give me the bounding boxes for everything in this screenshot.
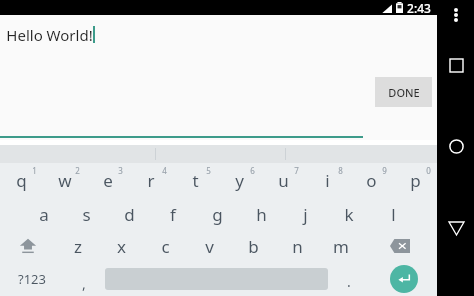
staticText: e — [103, 169, 113, 192]
staticText: 7 — [294, 165, 299, 176]
staticText: 2 — [75, 165, 80, 176]
staticText: t — [192, 169, 199, 192]
button[interactable]: Recents — [441, 50, 471, 80]
button[interactable]: . — [328, 262, 370, 296]
staticText: k — [344, 203, 354, 226]
button[interactable]: v — [187, 230, 231, 262]
button[interactable]: Enter — [370, 262, 437, 296]
staticText: j — [303, 203, 308, 226]
staticText: a — [39, 203, 49, 226]
button[interactable]: Back — [441, 213, 471, 243]
button[interactable]: l — [371, 198, 415, 230]
staticText: 8 — [338, 165, 343, 176]
staticText: v — [205, 235, 214, 258]
button[interactable]: a — [22, 198, 65, 230]
staticText: m — [333, 235, 349, 258]
button[interactable]: More options — [446, 5, 466, 25]
button[interactable]: j — [283, 198, 327, 230]
staticText: Hello World! — [6, 25, 93, 45]
button[interactable]: p — [393, 163, 437, 198]
staticText: q — [16, 169, 27, 192]
staticText: DONE — [388, 85, 420, 100]
button[interactable]: n — [275, 230, 319, 262]
staticText: w — [58, 169, 72, 192]
button[interactable]: h — [239, 198, 283, 230]
staticText: 1 — [32, 165, 37, 176]
button[interactable]: u — [261, 163, 305, 198]
button[interactable]: z — [56, 230, 99, 262]
staticText: f — [170, 203, 176, 226]
staticText: i — [325, 169, 330, 192]
button[interactable]: i — [305, 163, 349, 198]
staticText: . — [347, 272, 351, 291]
button[interactable]: d — [108, 198, 151, 230]
staticText: 9 — [382, 165, 387, 176]
staticText: ?123 — [18, 270, 46, 288]
staticText: 3 — [118, 165, 123, 176]
button[interactable]: k — [327, 198, 371, 230]
button[interactable]: t — [173, 163, 217, 198]
staticText: d — [124, 203, 135, 226]
staticText: 2:43 — [407, 0, 431, 15]
button[interactable]: Home — [441, 131, 471, 161]
button[interactable]: y — [217, 163, 261, 198]
staticText: c — [161, 235, 170, 258]
button[interactable]: f — [151, 198, 195, 230]
button[interactable]: r — [129, 163, 173, 198]
staticText: 4 — [162, 165, 167, 176]
staticText: 0 — [426, 165, 431, 176]
staticText: , — [82, 274, 86, 293]
button[interactable]: ?123 — [0, 262, 63, 296]
button[interactable]: DONE — [375, 77, 432, 107]
button[interactable]: x — [99, 230, 143, 262]
staticText: y — [235, 169, 244, 192]
staticText: p — [410, 169, 421, 192]
staticText: o — [366, 169, 377, 192]
staticText: h — [256, 203, 267, 226]
button[interactable]: b — [231, 230, 275, 262]
button[interactable]: o — [349, 163, 393, 198]
button[interactable]: , — [63, 262, 105, 296]
button[interactable]: c — [143, 230, 187, 262]
button[interactable]: m — [319, 230, 363, 262]
button[interactable]: Shift — [0, 230, 56, 262]
staticText: b — [248, 235, 259, 258]
staticText: 5 — [206, 165, 211, 176]
button[interactable]: w — [43, 163, 86, 198]
button[interactable]: s — [65, 198, 108, 230]
button[interactable]: Backspace — [363, 230, 437, 262]
staticText: g — [212, 203, 223, 226]
button[interactable]: g — [195, 198, 239, 230]
button[interactable]: e — [86, 163, 129, 198]
button[interactable]: q — [0, 163, 43, 198]
staticText: s — [82, 203, 91, 226]
staticText: x — [117, 235, 126, 258]
staticText: u — [278, 169, 289, 192]
staticText: 6 — [250, 165, 255, 176]
staticText: z — [74, 235, 82, 258]
staticText: n — [292, 235, 303, 258]
staticText: l — [391, 203, 396, 226]
staticText: r — [147, 169, 155, 192]
